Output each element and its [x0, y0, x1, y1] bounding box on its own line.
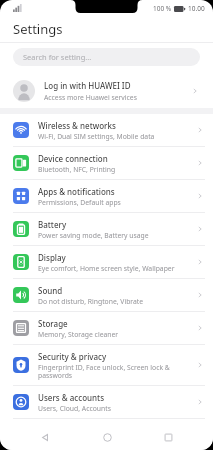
staticText: Permissions, Default apps — [38, 198, 121, 207]
other: Open — [195, 397, 205, 407]
button[interactable]: Users & accounts — [0, 386, 213, 418]
button[interactable]: Storage — [0, 312, 213, 344]
staticText: Do not disturb, Ringtone, Vibrate — [38, 297, 144, 306]
staticText: Access more Huawei services — [44, 93, 137, 102]
staticText: Display — [38, 252, 66, 263]
other: Open — [195, 323, 205, 333]
button[interactable]: Display — [0, 246, 213, 278]
button[interactable]: Wireless & networks — [0, 114, 213, 146]
staticText: Eye comfort, Home screen style, Wallpape… — [38, 264, 175, 273]
staticText: Power saving mode, Battery usage — [38, 231, 149, 240]
other: Open — [195, 158, 205, 168]
other: Open — [195, 360, 205, 370]
staticText: Settings — [13, 20, 63, 38]
button[interactable]: Apps & notifications — [0, 180, 213, 212]
other: Open — [190, 86, 200, 96]
button[interactable]: Home — [90, 424, 124, 450]
staticText: Bluetooth, NFC, Printing — [38, 165, 116, 174]
staticText: Memory, Storage cleaner — [38, 330, 119, 339]
other: Open — [195, 125, 205, 135]
button[interactable]: Security & privacy — [0, 345, 213, 385]
other: Open — [195, 224, 205, 234]
staticText: Wi-Fi, Dual SIM settings, Mobile data — [38, 132, 155, 141]
staticText: Apps & notifications — [38, 186, 115, 197]
staticText: Fingerprint ID, Face unlock, Screen lock… — [38, 363, 170, 380]
staticText: Battery — [38, 219, 67, 230]
staticText: Search for setting... — [23, 52, 92, 62]
button[interactable]: Sound — [0, 279, 213, 311]
staticText: Device connection — [38, 153, 108, 164]
other: Open — [195, 290, 205, 300]
staticText: Storage — [38, 318, 68, 329]
staticText: Log in with HUAWEI ID — [44, 80, 131, 91]
button[interactable]: Device connection — [0, 147, 213, 179]
button[interactable]: Log in with HUAWEI ID — [0, 74, 213, 108]
staticText: Users, Cloud, Accounts — [38, 404, 111, 413]
staticText: Security & privacy — [38, 351, 107, 362]
button[interactable]: Back — [28, 424, 62, 450]
button[interactable]: Battery — [0, 213, 213, 245]
staticText: 10.00 — [188, 4, 205, 13]
button[interactable]: Search for setting... — [13, 48, 200, 66]
staticText: Sound — [38, 285, 63, 296]
button[interactable]: Recent apps — [151, 424, 185, 450]
other: Open — [195, 257, 205, 267]
other: Open — [195, 191, 205, 201]
staticText: Users & accounts — [38, 392, 105, 403]
staticText: 100 % — [153, 4, 172, 13]
staticText: Wireless & networks — [38, 120, 116, 131]
